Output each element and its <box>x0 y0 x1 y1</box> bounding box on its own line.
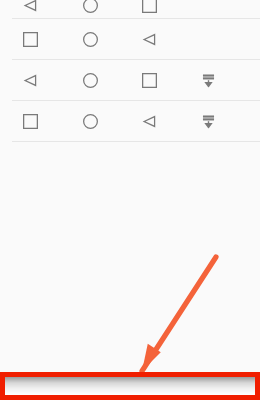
button[interactable]: Navigation bar <box>5 377 255 395</box>
button[interactable]: Back, Home, Recents with hide button <box>0 60 260 100</box>
button[interactable]: Back, Home, Recents layout <box>0 0 260 18</box>
button[interactable]: Recents, Home, Back with hide button <box>0 101 260 141</box>
button[interactable]: Recents, Home, Back layout <box>0 19 260 59</box>
